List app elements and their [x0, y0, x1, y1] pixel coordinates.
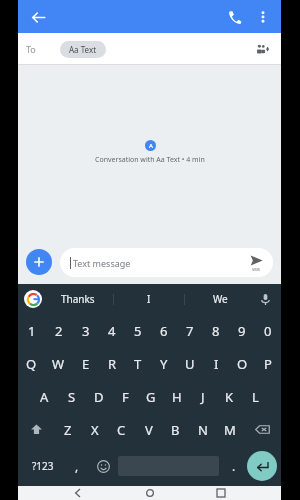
staticText: U: [185, 355, 195, 373]
button[interactable]: Q: [18, 347, 45, 380]
button[interactable]: More options: [249, 3, 277, 31]
staticText: SMS: [252, 267, 261, 272]
button[interactable]: R: [99, 347, 125, 380]
button[interactable]: V: [135, 413, 162, 446]
staticText: 7: [186, 322, 194, 340]
button[interactable]: L: [242, 380, 268, 413]
staticText: Y: [160, 355, 168, 373]
button[interactable]: 6: [151, 314, 177, 347]
staticText: I: [214, 355, 219, 373]
button[interactable]: Thanks: [42, 284, 113, 314]
staticText: C: [117, 421, 126, 439]
button[interactable]: Backspace: [243, 413, 281, 446]
staticText: V: [145, 421, 153, 439]
staticText: S: [68, 388, 76, 406]
button[interactable]: J: [190, 380, 216, 413]
button[interactable]: Y: [151, 347, 177, 380]
button[interactable]: Recents: [210, 486, 232, 500]
staticText: F: [122, 388, 129, 406]
staticText: 9: [238, 322, 246, 340]
staticText: 0: [264, 322, 272, 340]
button[interactable]: 4: [99, 314, 125, 347]
staticText: P: [264, 355, 272, 373]
staticText: O: [237, 355, 248, 373]
button[interactable]: Back: [67, 486, 89, 500]
staticText: E: [82, 355, 90, 373]
button[interactable]: E: [72, 347, 99, 380]
button[interactable]: Enter: [247, 451, 277, 481]
button[interactable]: P: [255, 347, 281, 380]
staticText: H: [172, 388, 182, 406]
button[interactable]: A: [31, 380, 58, 413]
button[interactable]: S: [58, 380, 85, 413]
button[interactable]: K: [216, 380, 242, 413]
button[interactable]: 8: [203, 314, 229, 347]
button[interactable]: G: [138, 380, 164, 413]
button[interactable]: I: [203, 347, 229, 380]
button[interactable]: Z: [55, 413, 81, 446]
staticText: A: [40, 388, 49, 406]
button[interactable]: U: [177, 347, 203, 380]
button[interactable]: ,: [64, 446, 90, 486]
button[interactable]: 7: [177, 314, 203, 347]
button[interactable]: W: [45, 347, 72, 380]
staticText: ?123: [32, 459, 54, 473]
button[interactable]: X: [81, 413, 108, 446]
button[interactable]: Voice input: [255, 289, 275, 309]
button[interactable]: Aa Text: [60, 41, 106, 58]
staticText: N: [198, 421, 208, 439]
button[interactable]: N: [189, 413, 216, 446]
staticText: 1: [28, 322, 36, 340]
button[interactable]: 0: [255, 314, 281, 347]
button[interactable]: 3: [72, 314, 99, 347]
button[interactable]: B: [162, 413, 189, 446]
staticText: G: [146, 388, 156, 406]
staticText: Q: [26, 355, 37, 373]
staticText: 6: [160, 322, 168, 340]
staticText: Conversation with Aa Text • 4 min: [95, 155, 205, 165]
button[interactable]: Add attachment: [26, 249, 52, 275]
button[interactable]: C: [108, 413, 135, 446]
button[interactable]: O: [229, 347, 255, 380]
staticText: X: [91, 421, 99, 439]
staticText: Thanks: [61, 292, 95, 306]
button[interactable]: H: [164, 380, 190, 413]
button[interactable]: Back: [24, 3, 52, 31]
button[interactable]: Text message: [60, 248, 273, 277]
staticText: D: [94, 388, 104, 406]
button[interactable]: Google: [24, 290, 42, 308]
button[interactable]: Call: [221, 3, 249, 31]
button[interactable]: Home: [139, 486, 161, 500]
button[interactable]: T: [125, 347, 151, 380]
button[interactable]: M: [216, 413, 243, 446]
staticText: K: [225, 388, 234, 406]
staticText: 8: [212, 322, 220, 340]
staticText: 5: [134, 322, 142, 340]
staticText: B: [171, 421, 180, 439]
button[interactable]: Shift: [18, 413, 55, 446]
button[interactable]: .: [221, 446, 247, 486]
button[interactable]: 5: [125, 314, 151, 347]
button[interactable]: We: [185, 284, 255, 314]
button[interactable]: Add recipient: [251, 38, 273, 60]
staticText: I: [147, 292, 151, 306]
staticText: M: [224, 421, 236, 439]
button[interactable]: Emoji: [90, 446, 116, 486]
button[interactable]: ?123: [22, 446, 64, 486]
staticText: Text message: [73, 257, 131, 269]
staticText: Aa Text: [69, 44, 97, 55]
button[interactable]: 1: [18, 314, 45, 347]
button[interactable]: I: [114, 284, 184, 314]
staticText: J: [201, 388, 205, 406]
staticText: We: [213, 292, 228, 306]
button[interactable]: D: [85, 380, 112, 413]
button[interactable]: 2: [45, 314, 72, 347]
button[interactable]: 9: [229, 314, 255, 347]
button[interactable]: F: [112, 380, 138, 413]
staticText: ,: [75, 458, 79, 474]
staticText: To: [26, 43, 36, 55]
staticText: .: [232, 458, 236, 474]
staticText: Z: [64, 421, 72, 439]
staticText: 3: [82, 322, 90, 340]
